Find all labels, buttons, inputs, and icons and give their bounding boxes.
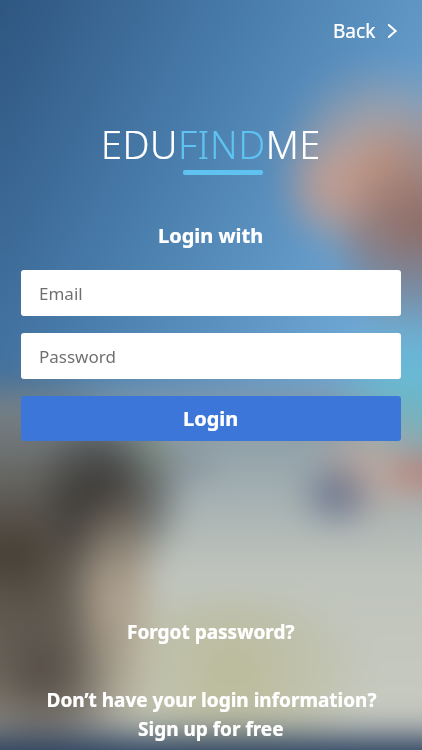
button[interactable]: Forgot password? [0, 613, 422, 651]
staticText: Forgot password? [127, 619, 295, 645]
staticText: Sign up for free [138, 716, 284, 742]
button[interactable]: Don’t have your login information? [0, 687, 422, 748]
staticText: Password [39, 345, 116, 368]
staticText: Login with [158, 222, 264, 249]
staticText: Login [183, 405, 239, 432]
staticText: Back [333, 18, 376, 44]
button[interactable]: Email [21, 270, 401, 316]
staticText: Email [39, 282, 83, 305]
staticText: EDUFINDME [101, 118, 321, 170]
button[interactable]: Password [21, 333, 401, 379]
button[interactable]: Login [21, 396, 401, 441]
staticText: Don’t have your login information? [46, 687, 377, 713]
button[interactable]: Back [327, 14, 408, 48]
